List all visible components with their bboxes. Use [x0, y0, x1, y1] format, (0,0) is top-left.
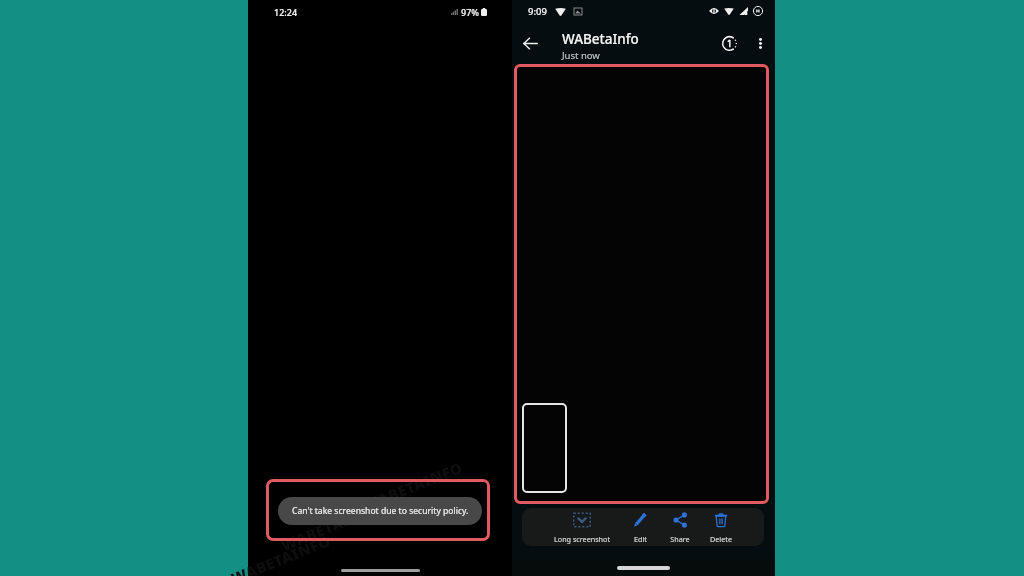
button[interactable]: Share — [645, 512, 715, 544]
button[interactable]: Edit — [605, 512, 675, 544]
staticText: Share — [670, 534, 690, 544]
staticText: Long screenshot — [554, 534, 610, 544]
staticText: Delete — [710, 534, 732, 544]
staticText: WABETAINFO — [228, 530, 334, 576]
button[interactable]: Back — [516, 29, 544, 57]
staticText: WABETAINFO — [360, 457, 466, 515]
button[interactable]: More options — [747, 30, 773, 56]
staticText: Can't take screenshot due to security po… — [292, 505, 469, 517]
staticText: 97% — [461, 6, 479, 18]
button[interactable]: View once — [715, 29, 743, 57]
staticText: WABetaInfo — [562, 30, 639, 48]
staticText: 9:09 — [528, 5, 547, 18]
staticText: Edit — [634, 534, 647, 544]
staticText: WABETAINFO — [278, 497, 384, 555]
staticText: Just now — [562, 49, 600, 62]
button[interactable]: Long screenshot — [547, 512, 617, 544]
staticText: 12:24 — [274, 6, 298, 18]
button[interactable]: Delete — [686, 512, 756, 544]
